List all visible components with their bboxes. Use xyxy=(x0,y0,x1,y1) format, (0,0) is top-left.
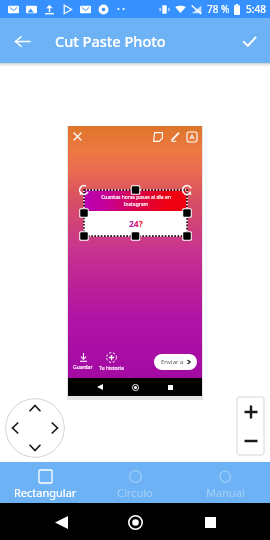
staticText: Rectangular xyxy=(14,485,77,500)
button[interactable]: Zoom in xyxy=(237,397,264,426)
button[interactable]: Text xyxy=(186,131,197,142)
button[interactable]: Enviar a xyxy=(154,354,197,370)
button[interactable]: Stickers xyxy=(152,131,163,142)
button[interactable]: Círculo xyxy=(90,462,180,503)
staticText: Manual xyxy=(206,485,245,500)
staticText: 24? xyxy=(129,218,143,230)
button[interactable]: Zoom out xyxy=(237,426,264,455)
button[interactable]: Back xyxy=(3,22,41,60)
button[interactable]: Move xyxy=(5,398,65,458)
button[interactable]: Tu historia xyxy=(99,352,124,372)
button[interactable]: Close xyxy=(72,131,83,142)
staticText: 5:48 xyxy=(246,2,266,16)
staticText: 78 % xyxy=(207,2,230,16)
button[interactable]: Done xyxy=(228,20,270,62)
button[interactable]: Draw xyxy=(169,131,180,142)
staticText: Círculo xyxy=(117,485,153,500)
button[interactable]: Home xyxy=(121,508,149,536)
staticText: Cuantas horas pasas al día en Instagram xyxy=(101,194,171,208)
staticText: Guardar xyxy=(73,364,93,371)
staticText: Cut Paste Photo xyxy=(55,31,166,51)
staticText: Enviar a xyxy=(161,358,184,366)
button[interactable]: Recents xyxy=(196,508,224,536)
staticText: Tu historia xyxy=(99,365,124,372)
button[interactable]: Guardar xyxy=(73,353,93,371)
button[interactable]: Manual xyxy=(180,462,270,503)
button[interactable]: Rectangular xyxy=(0,462,90,503)
button[interactable]: Back xyxy=(47,508,75,536)
